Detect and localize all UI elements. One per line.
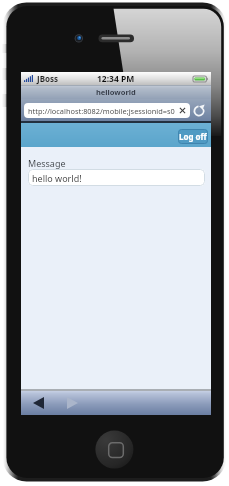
staticText: Log off [179, 131, 207, 142]
button[interactable]: Clear [178, 106, 187, 115]
staticText: 12:34 PM [97, 73, 135, 85]
staticText: JBoss [37, 73, 58, 84]
button[interactable]: hello world! [28, 169, 205, 186]
button[interactable]: http://localhost:8082/mobile;jsessionid=… [24, 103, 190, 118]
staticText: http://localhost:8082/mobile;jsessionid=… [28, 106, 175, 116]
button[interactable]: Log off [178, 129, 208, 144]
staticText: helloworld [96, 87, 136, 97]
staticText: Message [28, 157, 66, 169]
button[interactable]: Forward [63, 394, 82, 412]
button[interactable]: Back [29, 394, 48, 412]
staticText: hello world! [32, 172, 82, 184]
button[interactable]: Reload [192, 104, 206, 118]
